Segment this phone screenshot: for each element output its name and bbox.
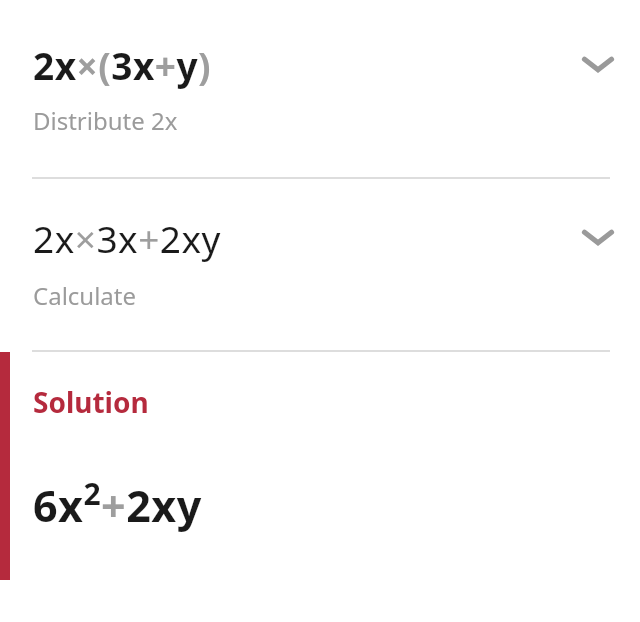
staticText: Solution — [33, 383, 149, 421]
other: Expand step — [576, 42, 620, 86]
staticText: 6x2+2xy — [33, 473, 202, 534]
staticText: Calculate — [33, 279, 137, 312]
staticText: 2x×3x+2xy — [33, 213, 221, 263]
button[interactable]: Solution — [10, 352, 640, 534]
button[interactable]: 2x×(3x+y) — [0, 0, 640, 177]
button[interactable]: 2x×3x+2xy — [0, 179, 640, 350]
other: Expand step — [576, 215, 620, 259]
staticText: Distribute 2x — [33, 104, 178, 137]
staticText: 2x×(3x+y) — [33, 40, 212, 90]
